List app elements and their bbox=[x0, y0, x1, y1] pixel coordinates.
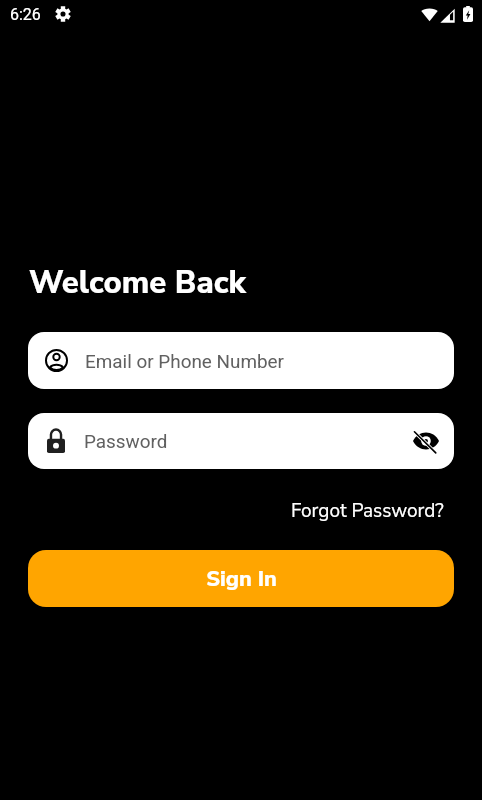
staticText: Forgot Password? bbox=[291, 498, 444, 524]
staticText: 6:26 bbox=[10, 5, 41, 24]
button[interactable]: Show password bbox=[409, 424, 443, 458]
staticText: Welcome Back bbox=[29, 262, 246, 304]
staticText: Sign In bbox=[206, 564, 277, 593]
staticText: Email or Phone Number bbox=[85, 350, 285, 372]
button[interactable]: Sign In bbox=[28, 550, 454, 607]
button[interactable]: Forgot Password? bbox=[283, 492, 452, 530]
button[interactable]: Password bbox=[28, 413, 454, 469]
staticText: Password bbox=[84, 430, 409, 452]
button[interactable]: Email or Phone Number bbox=[28, 332, 454, 389]
